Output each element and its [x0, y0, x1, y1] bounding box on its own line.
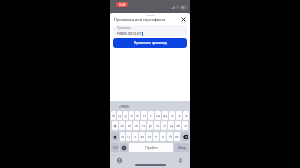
- staticText: в: [128, 123, 131, 129]
- staticText: 123: [112, 146, 118, 150]
- staticText: ю: [175, 134, 179, 140]
- staticText: «FWRK»: [118, 104, 130, 109]
- staticText: ы: [120, 123, 124, 129]
- staticText: ж: [176, 123, 180, 129]
- staticText: FWRK-0012-KT: [117, 31, 142, 36]
- staticText: ф: [113, 123, 117, 129]
- button[interactable]: «FWRK»: [118, 104, 130, 109]
- staticText: г: [150, 113, 152, 119]
- button[interactable]: х: [176, 111, 182, 120]
- staticText: я: [121, 134, 124, 140]
- staticText: Применить промокод: [134, 41, 167, 45]
- button[interactable]: н: [141, 111, 147, 120]
- staticText: м: [140, 134, 144, 140]
- staticText: Промокод или сертификат: [114, 17, 166, 22]
- button[interactable]: ъ: [183, 111, 189, 120]
- button[interactable]: б: [167, 132, 173, 141]
- staticText: б: [169, 134, 172, 140]
- button[interactable]: Промокод: [113, 25, 187, 36]
- button[interactable]: у: [123, 111, 128, 120]
- staticText: 9:41: [119, 2, 126, 7]
- staticText: н: [143, 113, 146, 119]
- button[interactable]: р: [147, 121, 153, 130]
- staticText: Пробел: [145, 145, 158, 150]
- staticText: ш: [156, 113, 160, 119]
- button[interactable]: ь: [160, 132, 166, 141]
- staticText: х: [178, 113, 181, 119]
- button[interactable]: ц: [117, 111, 122, 120]
- staticText: ч: [127, 134, 130, 140]
- other: Голосовой ввод: [178, 158, 183, 163]
- staticText: у: [124, 113, 127, 119]
- staticText: и: [148, 134, 151, 140]
- button[interactable]: Применить промокод: [113, 38, 187, 48]
- staticText: о: [156, 123, 159, 129]
- staticText: л: [163, 123, 166, 129]
- button[interactable]: ы: [119, 121, 125, 130]
- button[interactable]: м: [139, 132, 145, 141]
- button[interactable]: в: [126, 121, 132, 130]
- staticText: а: [135, 123, 138, 129]
- button[interactable]: п: [140, 121, 146, 130]
- button[interactable]: ч: [126, 132, 131, 141]
- button[interactable]: ф: [112, 121, 118, 130]
- staticText: к: [130, 113, 133, 119]
- button[interactable]: д: [168, 121, 174, 130]
- button[interactable]: я: [120, 132, 125, 141]
- staticText: ц: [118, 113, 121, 119]
- staticText: э: [184, 123, 187, 129]
- staticText: й: [112, 113, 115, 119]
- button[interactable]: 123: [111, 143, 119, 152]
- staticText: р: [149, 123, 152, 129]
- button[interactable]: Shift: [111, 132, 119, 141]
- staticText: т: [155, 134, 157, 140]
- button[interactable]: к: [129, 111, 134, 120]
- staticText: Промокод: [117, 26, 131, 30]
- button[interactable]: с: [132, 132, 138, 141]
- button[interactable]: а: [133, 121, 139, 130]
- button[interactable]: Пробел: [129, 143, 173, 152]
- button[interactable]: и: [146, 132, 152, 141]
- button[interactable]: щ: [162, 111, 168, 120]
- staticText: п: [142, 123, 145, 129]
- button[interactable]: Удалить: [181, 132, 189, 141]
- button[interactable]: т: [153, 132, 159, 141]
- button[interactable]: з: [169, 111, 175, 120]
- staticText: с: [134, 134, 137, 140]
- staticText: щ: [163, 113, 167, 119]
- button[interactable]: й: [111, 111, 116, 120]
- button[interactable]: Ввод: [174, 143, 189, 152]
- button[interactable]: г: [148, 111, 154, 120]
- button[interactable]: л: [161, 121, 167, 130]
- staticText: Ввод: [178, 146, 186, 150]
- button[interactable]: Эмодзи: [120, 143, 128, 152]
- button[interactable]: ю: [174, 132, 180, 141]
- staticText: д: [170, 123, 173, 129]
- button[interactable]: е: [135, 111, 140, 120]
- staticText: е: [136, 113, 139, 119]
- button[interactable]: Закрыть: [180, 16, 187, 23]
- button[interactable]: ж: [175, 121, 181, 130]
- button[interactable]: э: [182, 121, 188, 130]
- staticText: з: [171, 113, 174, 119]
- other: Сменить язык: [117, 158, 122, 163]
- staticText: ъ: [185, 113, 188, 119]
- button[interactable]: о: [154, 121, 160, 130]
- staticText: ь: [162, 134, 165, 140]
- button[interactable]: ш: [155, 111, 161, 120]
